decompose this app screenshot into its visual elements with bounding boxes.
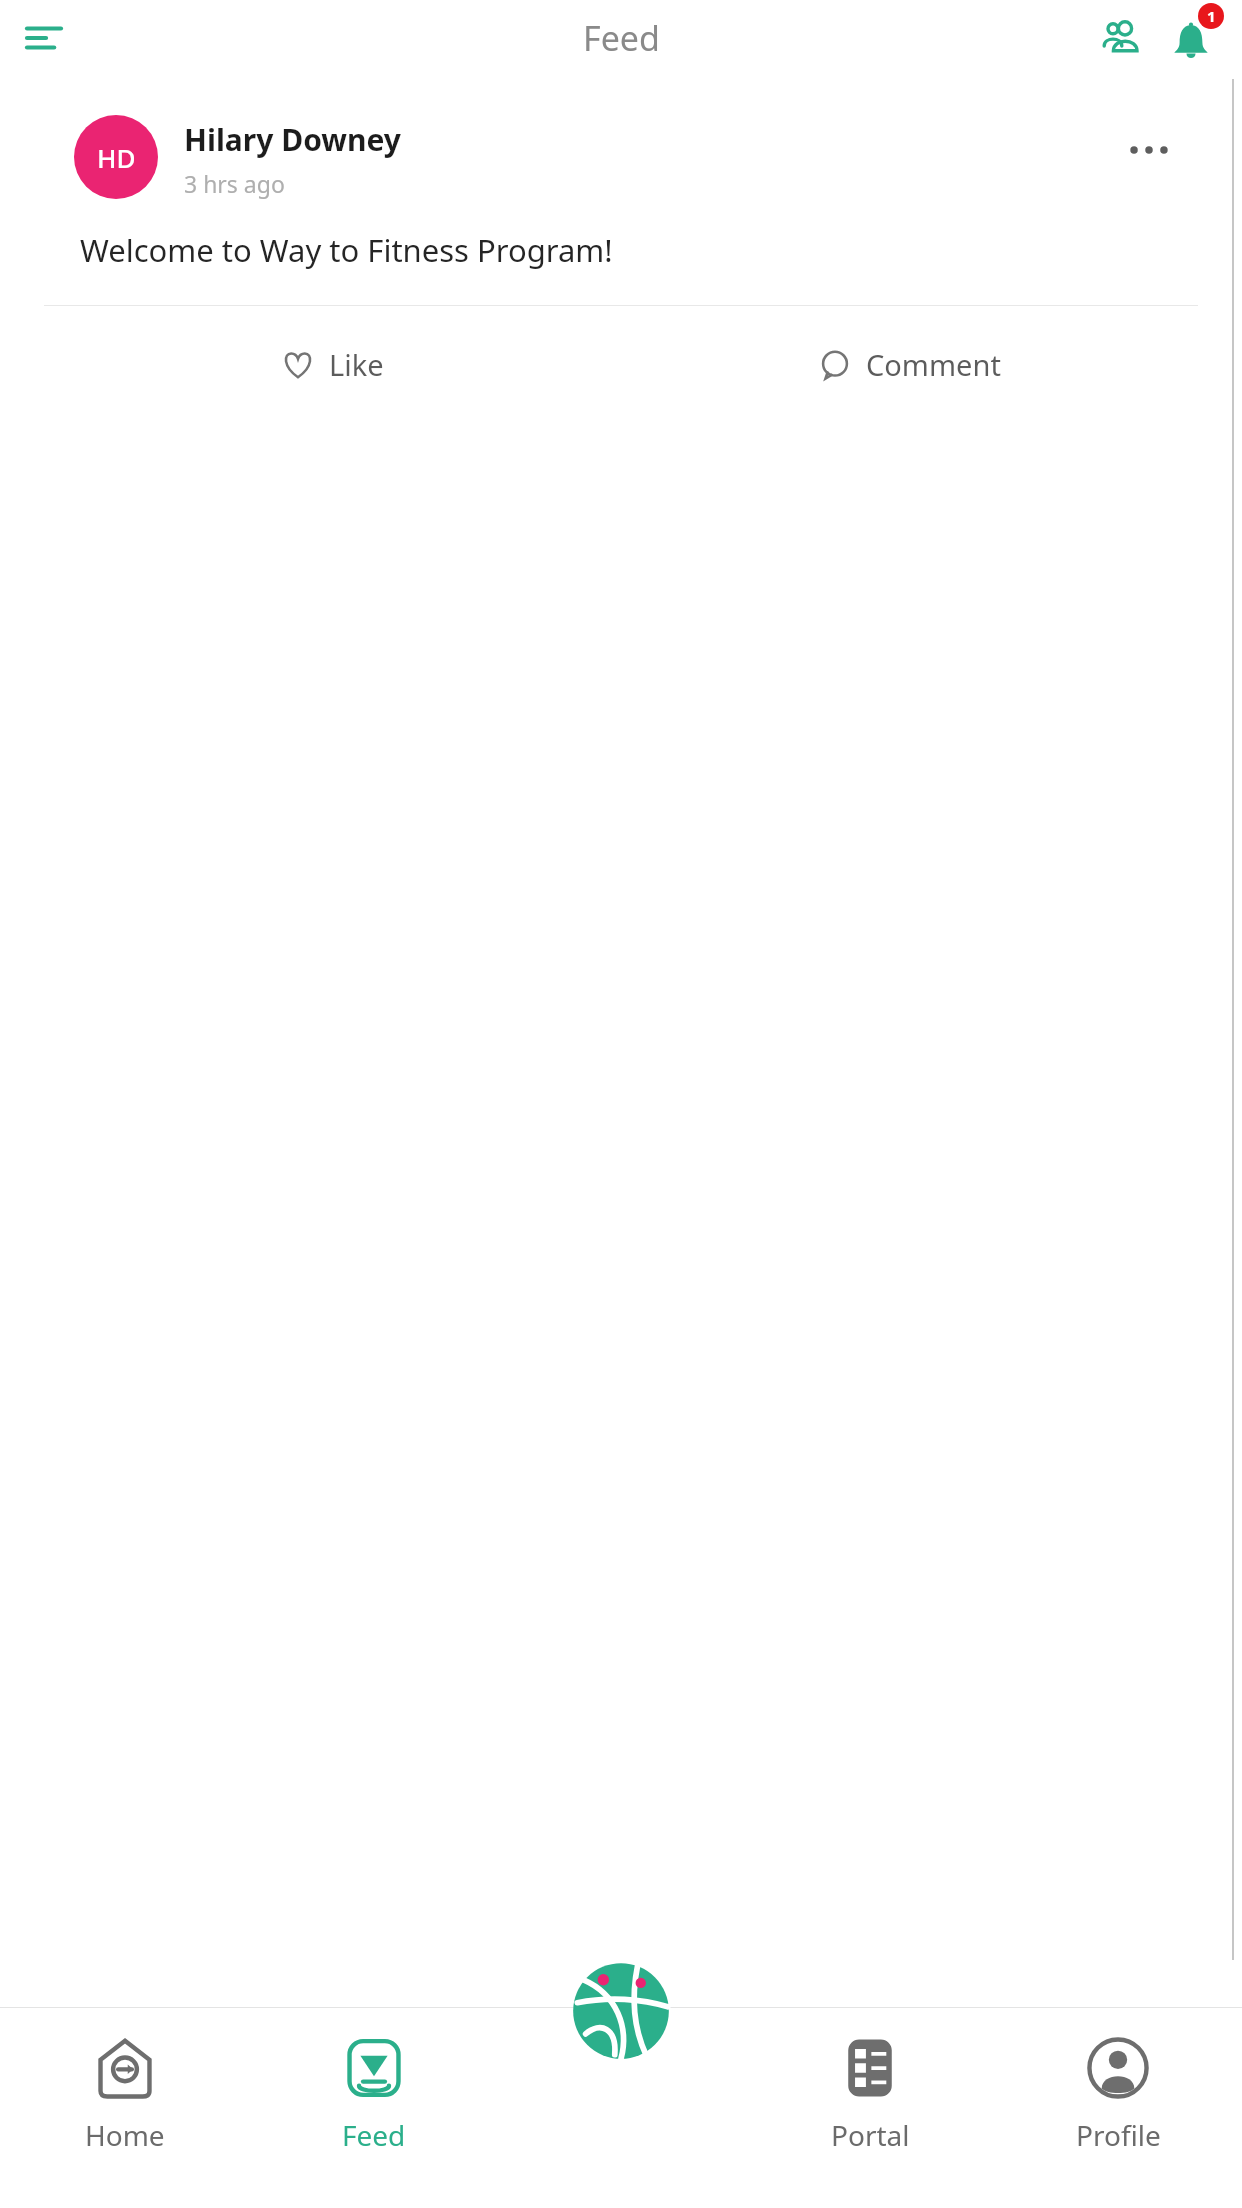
- staticText: 3 hrs ago: [184, 168, 285, 199]
- staticText: Home: [85, 2116, 165, 2154]
- staticText: Comment: [866, 345, 1001, 384]
- button[interactable]: Profile: [994, 2008, 1242, 2208]
- button[interactable]: Feed: [249, 2008, 498, 2208]
- staticText: Portal: [831, 2116, 910, 2154]
- button[interactable]: Home: [0, 2008, 249, 2208]
- staticText: Feed: [342, 2116, 406, 2154]
- staticText: HD: [97, 140, 136, 175]
- staticText: Hilary Downey: [184, 119, 401, 160]
- button[interactable]: Like: [44, 306, 621, 422]
- staticText: 1: [1207, 6, 1216, 26]
- button[interactable]: Portal: [746, 2008, 994, 2208]
- staticText: Welcome to Way to Fitness Program!: [80, 229, 613, 271]
- button[interactable]: Activity: [565, 1955, 677, 2067]
- button[interactable]: Menu: [18, 12, 70, 64]
- button[interactable]: More options: [1120, 121, 1178, 179]
- staticText: Like: [329, 345, 384, 384]
- staticText: Profile: [1076, 2116, 1161, 2154]
- button[interactable]: Comment: [621, 306, 1198, 422]
- button[interactable]: Friends: [1092, 9, 1150, 67]
- staticText: Feed: [583, 15, 660, 61]
- button[interactable]: Notifications: [1160, 7, 1222, 69]
- button[interactable]: HD: [44, 89, 1198, 422]
